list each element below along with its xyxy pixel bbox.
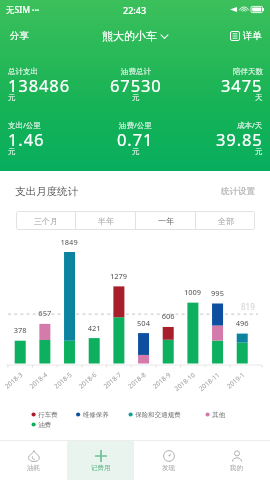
staticText: 元 bbox=[8, 93, 16, 102]
staticText: ··· bbox=[32, 4, 40, 16]
button[interactable]: 统计设置 bbox=[221, 186, 255, 197]
button[interactable]: 全部 bbox=[196, 211, 255, 230]
staticText: 1.46 bbox=[8, 128, 45, 150]
staticText: 我的 bbox=[230, 464, 243, 472]
staticText: 发现 bbox=[162, 464, 175, 472]
staticText: 3475 bbox=[221, 74, 263, 96]
staticText: 无SIM bbox=[6, 4, 30, 16]
staticText: 成本/天 bbox=[237, 120, 263, 130]
staticText: 0.71 bbox=[117, 128, 154, 150]
staticText: 138486 bbox=[8, 74, 71, 96]
button[interactable]: 油耗 bbox=[0, 441, 67, 480]
staticText: 三个月 bbox=[34, 216, 58, 226]
staticText: 油费总计 bbox=[121, 67, 151, 76]
staticText: 元 bbox=[8, 147, 16, 156]
staticText: 22:43 bbox=[123, 4, 147, 16]
button[interactable]: 我的 bbox=[202, 441, 270, 480]
staticText: 天 bbox=[255, 93, 263, 102]
button[interactable]: 熊大的小车 bbox=[102, 29, 168, 43]
staticText: 67530 bbox=[110, 74, 162, 96]
staticText: 一年 bbox=[158, 216, 174, 226]
staticText: 支出/公里 bbox=[8, 120, 41, 130]
staticText: 熊大的小车 bbox=[102, 29, 157, 43]
button[interactable]: 详单 bbox=[230, 30, 262, 42]
button[interactable]: 记费用 bbox=[67, 441, 134, 480]
button[interactable]: 三个月 bbox=[16, 211, 75, 230]
button[interactable]: 发现 bbox=[134, 441, 202, 480]
staticText: 统计设置 bbox=[221, 186, 255, 197]
staticText: 分享 bbox=[10, 30, 29, 42]
staticText: 元 bbox=[255, 147, 263, 156]
staticText: 半年 bbox=[98, 216, 114, 226]
staticText: 39.85 bbox=[216, 128, 263, 150]
staticText: 支出月度统计 bbox=[15, 185, 78, 198]
staticText: 陪伴天数 bbox=[233, 67, 263, 76]
staticText: 全部 bbox=[218, 216, 234, 226]
staticText: 元 bbox=[132, 93, 140, 102]
staticText: 详单 bbox=[243, 30, 262, 42]
staticText: 总计支出 bbox=[8, 67, 38, 76]
staticText: 油耗 bbox=[27, 464, 40, 472]
button[interactable]: 半年 bbox=[76, 211, 135, 230]
staticText: 元 bbox=[132, 147, 140, 156]
staticText: 油费/公里 bbox=[119, 120, 152, 130]
button[interactable]: 一年 bbox=[136, 211, 195, 230]
staticText: 记费用 bbox=[91, 464, 111, 472]
button[interactable]: 分享 bbox=[10, 30, 29, 42]
